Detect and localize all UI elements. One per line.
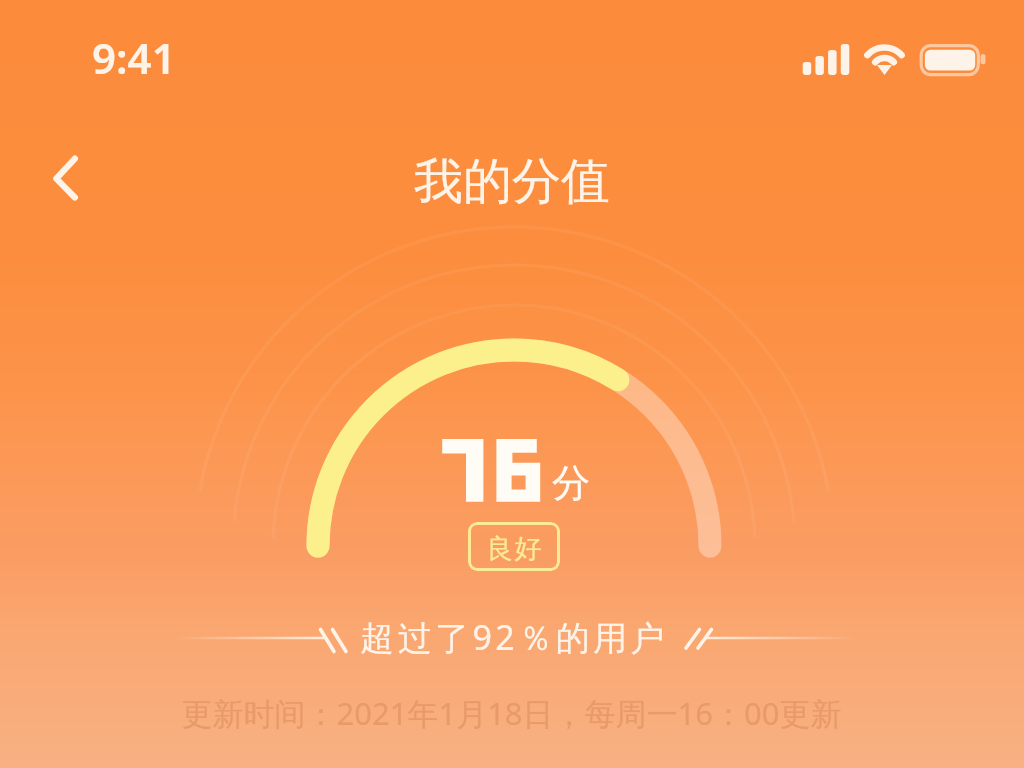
staticText: 超过了92％的用户 xyxy=(360,614,668,660)
button[interactable]: Back xyxy=(33,146,97,210)
staticText: 9:41 xyxy=(92,29,176,86)
button[interactable]: 良好 xyxy=(468,522,560,571)
staticText: 分 xyxy=(552,459,590,507)
staticText: 良好 xyxy=(486,532,542,566)
staticText: 更新时间：2021年1月18日，每周一16：00更新 xyxy=(181,692,842,734)
staticText: 我的分值 xyxy=(414,151,610,213)
